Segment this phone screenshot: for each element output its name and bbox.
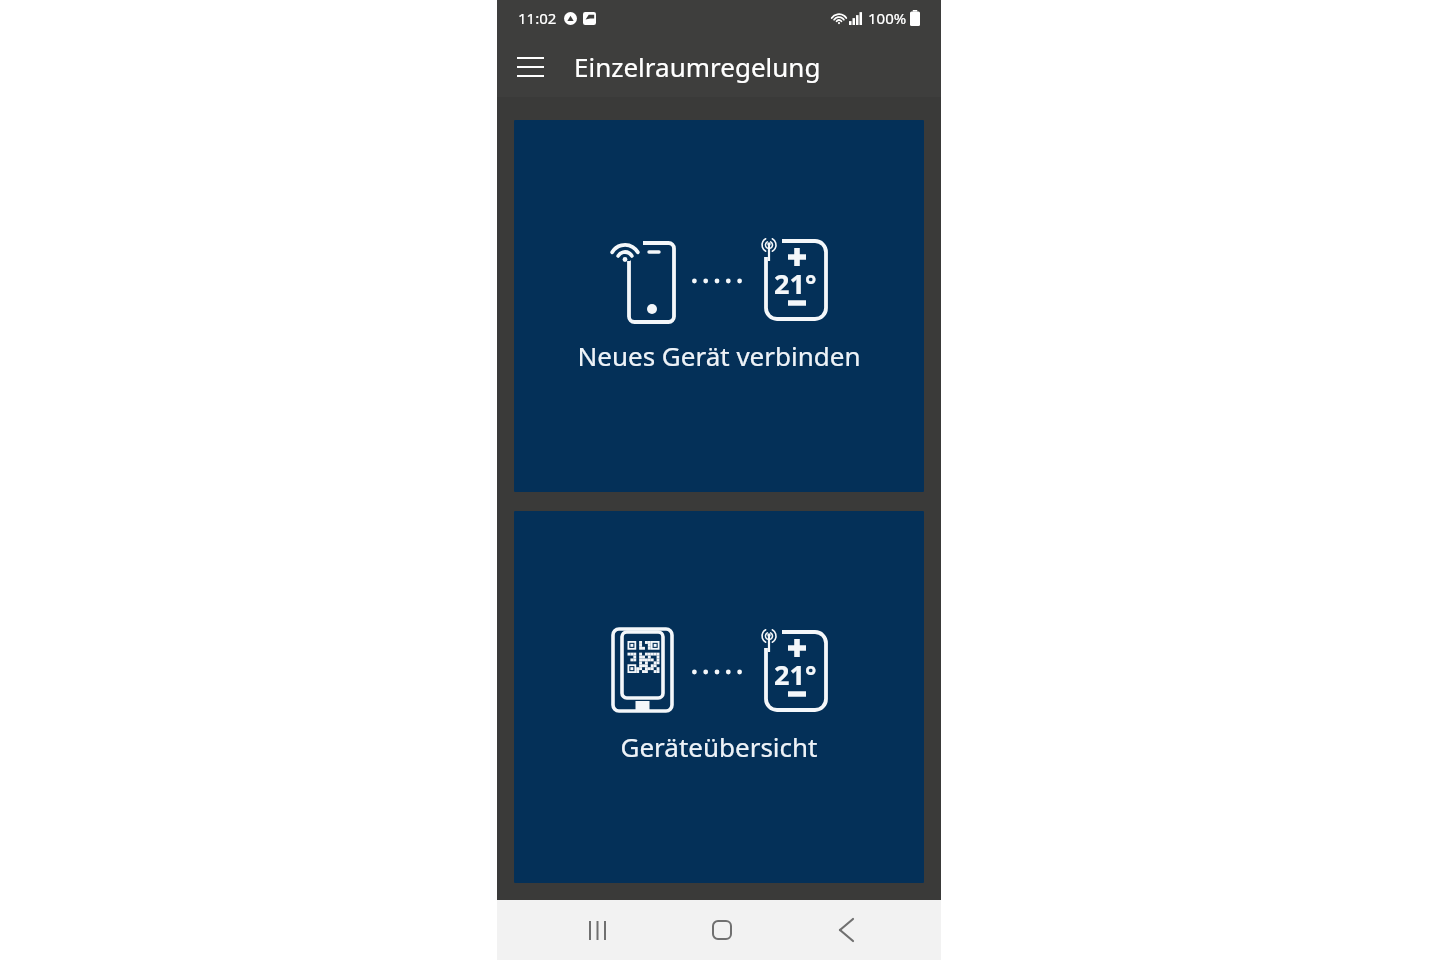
button[interactable]: 21°	[514, 511, 924, 883]
button[interactable]: Recent apps	[547, 900, 647, 960]
button[interactable]: 21°	[514, 120, 924, 492]
button[interactable]: Menu	[508, 45, 552, 89]
staticText: 11:02	[518, 8, 557, 28]
staticText: 21°	[774, 656, 817, 693]
staticText: Geräteübersicht	[620, 729, 818, 764]
staticText: 21°	[774, 265, 817, 302]
staticText: Neues Gerät verbinden	[577, 338, 861, 373]
staticText: 100%	[868, 8, 907, 28]
button[interactable]: Home	[672, 900, 772, 960]
staticText: Einzelraumregelung	[574, 49, 821, 84]
button[interactable]: Back	[796, 900, 896, 960]
